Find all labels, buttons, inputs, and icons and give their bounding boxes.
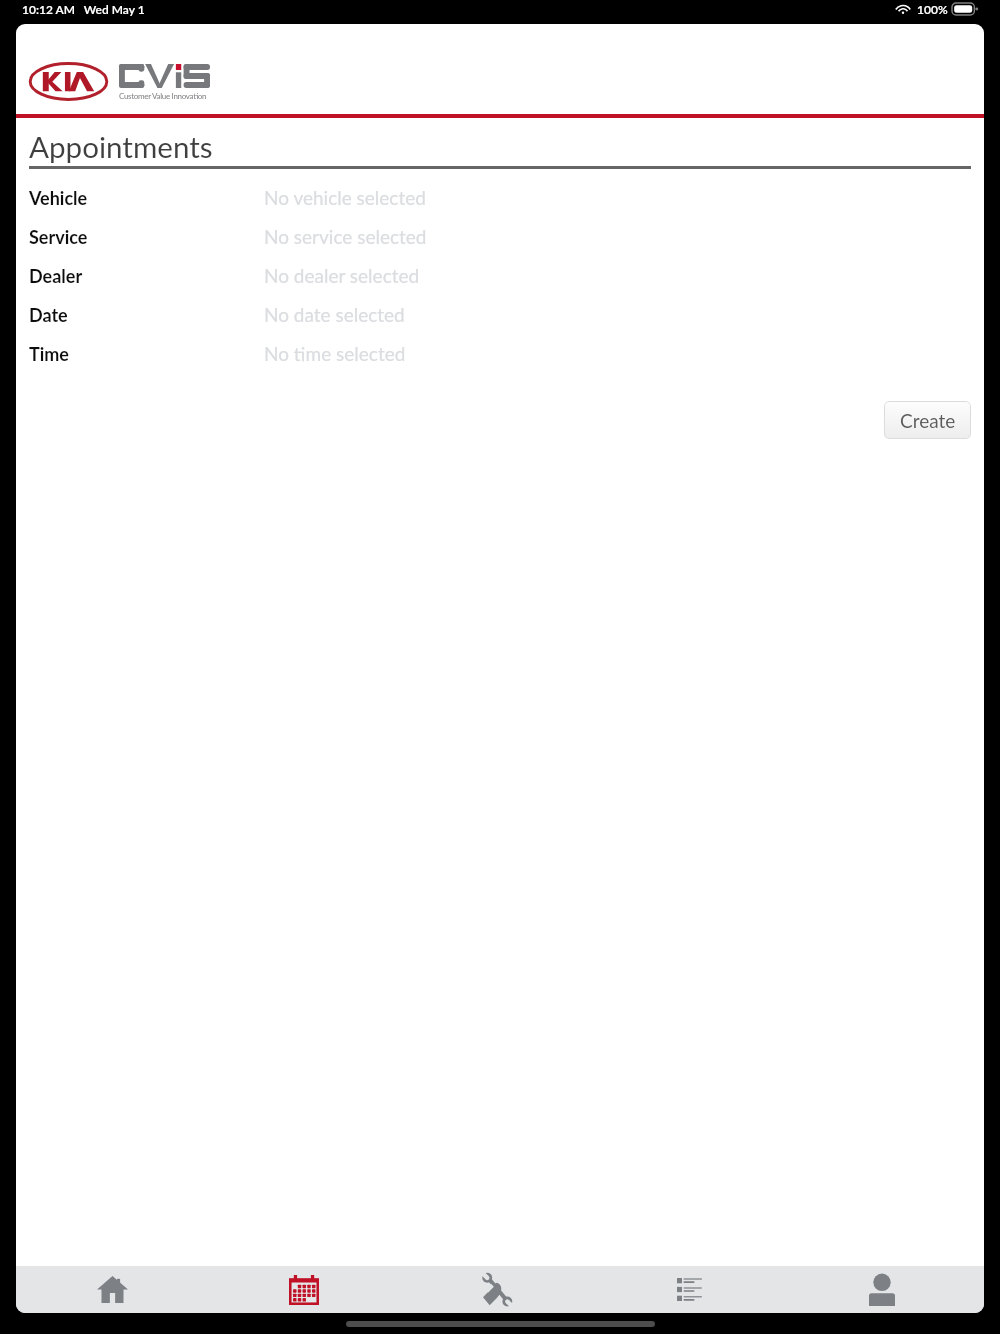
staticText: Create: [900, 409, 956, 432]
staticText: Service: [29, 226, 264, 248]
button[interactable]: Date: [16, 295, 984, 334]
staticText: Vehicle: [29, 187, 264, 209]
button[interactable]: Time: [16, 334, 984, 373]
staticText: 100%: [917, 2, 948, 16]
staticText: No time selected: [264, 342, 406, 365]
button[interactable]: Vehicle: [16, 178, 984, 217]
staticText: Date: [29, 304, 264, 326]
button[interactable]: Service: [402, 1266, 596, 1313]
button[interactable]: Records: [596, 1266, 790, 1313]
staticText: No dealer selected: [264, 264, 420, 287]
button[interactable]: Profile: [790, 1266, 984, 1313]
staticText: No service selected: [264, 225, 427, 248]
staticText: 10:12 AM Wed May 1: [22, 2, 145, 16]
staticText: No date selected: [264, 303, 405, 326]
button[interactable]: Create: [884, 401, 971, 439]
staticText: Dealer: [29, 265, 264, 287]
button[interactable]: Dealer: [16, 256, 984, 295]
staticText: Time: [29, 343, 264, 365]
button[interactable]: Appointments: [209, 1266, 402, 1313]
button[interactable]: Home: [16, 1266, 209, 1313]
staticText: Customer Value Innovation: [119, 91, 207, 101]
button[interactable]: Service: [16, 217, 984, 256]
staticText: No vehicle selected: [264, 186, 426, 209]
staticText: Appointments: [29, 129, 213, 165]
